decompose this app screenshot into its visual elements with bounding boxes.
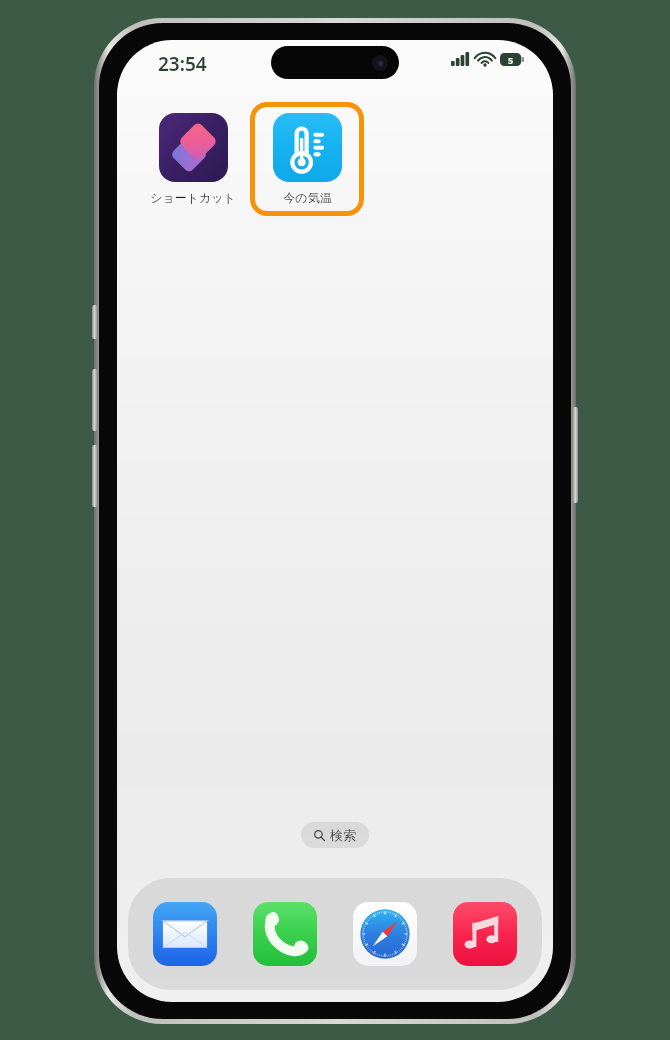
button[interactable]: 今の気温 (255, 107, 359, 211)
button[interactable]: Phone (250, 899, 320, 969)
button[interactable]: Music (450, 899, 520, 969)
staticText: ショートカット (150, 190, 236, 205)
button[interactable]: ショートカット (141, 107, 245, 211)
staticText: 今の気温 (283, 190, 332, 205)
staticText: 5 (508, 54, 514, 66)
button[interactable]: Mail (150, 899, 220, 969)
staticText: 検索 (330, 827, 356, 843)
staticText: 23:54 (158, 51, 207, 77)
button[interactable]: 検索 (301, 822, 369, 848)
button[interactable]: Safari (350, 899, 420, 969)
